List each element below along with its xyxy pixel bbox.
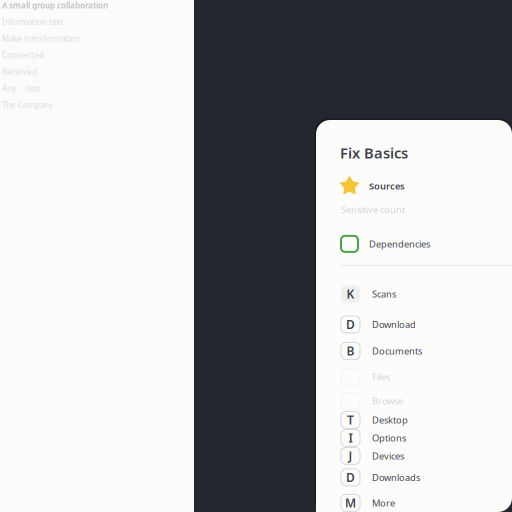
button[interactable]: K (316, 279, 512, 309)
staticText: Make transformation (2, 33, 80, 44)
button[interactable]: T (316, 410, 512, 430)
staticText: Received (2, 66, 37, 77)
staticText: Devices (372, 450, 404, 462)
staticText: The Company (2, 100, 53, 110)
staticText: I (348, 430, 352, 446)
staticText: Documents (372, 345, 422, 357)
button[interactable] (316, 392, 512, 410)
staticText: Browse (372, 395, 403, 407)
button[interactable]: D (316, 466, 512, 489)
staticText: Downloads (372, 471, 420, 484)
staticText: Any text (2, 83, 40, 94)
staticText: Files (372, 371, 390, 383)
staticText: More (372, 497, 395, 509)
staticText: B (346, 343, 354, 359)
staticText: Fix Basics (340, 143, 408, 162)
staticText: Desktop (372, 414, 408, 426)
staticText: T (347, 412, 354, 428)
button[interactable]: J (316, 446, 512, 466)
staticText: Connected (2, 50, 44, 60)
staticText: Scans (372, 288, 396, 300)
staticText: Sources (369, 180, 405, 192)
staticText: A small group collaboration (2, 0, 108, 11)
button[interactable]: M (316, 489, 512, 512)
staticText: D (346, 316, 355, 332)
button[interactable]: I (316, 430, 512, 446)
staticText: K (346, 286, 354, 302)
staticText: Dependencies (369, 238, 430, 250)
staticText: D (346, 469, 355, 485)
staticText: J (348, 448, 352, 464)
staticText: Download (372, 318, 416, 331)
staticText: M (345, 495, 356, 511)
staticText: Options (372, 432, 406, 444)
button[interactable]: Sources (316, 175, 512, 196)
button[interactable]: D (316, 309, 512, 340)
staticText: Information text (2, 17, 63, 27)
staticText: Sensitive count (341, 203, 405, 216)
button[interactable]: B (316, 340, 512, 362)
button[interactable]: Dependencies (316, 236, 512, 252)
